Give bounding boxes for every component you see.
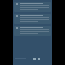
button[interactable] (14, 2, 51, 12)
button[interactable] (14, 26, 51, 36)
button[interactable] (14, 14, 51, 24)
